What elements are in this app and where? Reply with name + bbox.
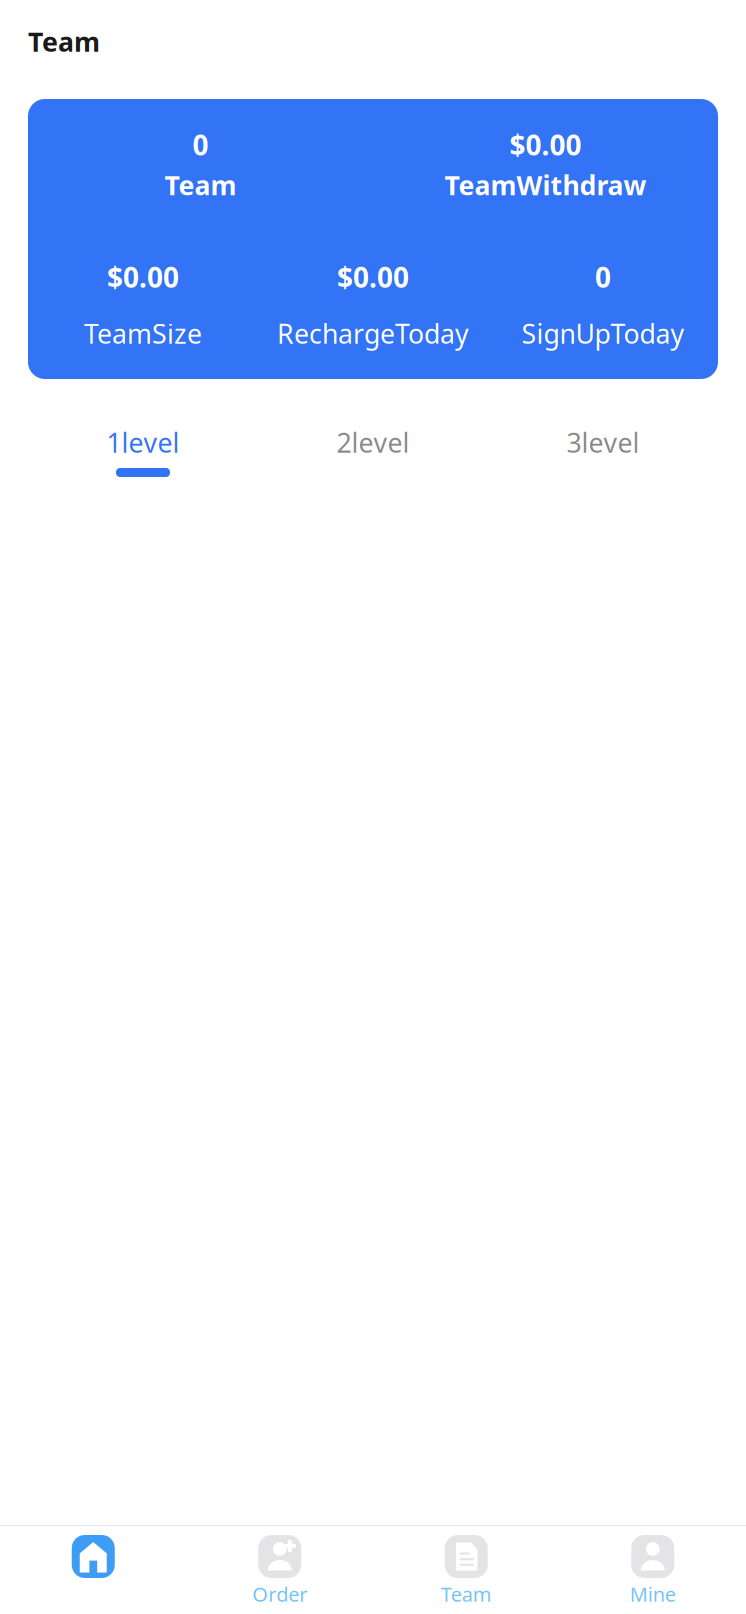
staticText: 3level (566, 425, 639, 460)
staticText: SignUpToday (521, 316, 684, 351)
staticText: Mine (630, 1581, 676, 1607)
staticText: 0 (595, 258, 611, 296)
staticText: 0 (192, 126, 208, 163)
staticText: $0.00 (107, 258, 179, 296)
button[interactable]: Mine (559, 1526, 746, 1614)
button[interactable]: Home (0, 1526, 186, 1614)
button[interactable]: 1level (28, 428, 258, 483)
staticText: $0.00 (337, 258, 409, 296)
staticText: RechargeToday (277, 316, 469, 351)
staticText: $0.00 (509, 126, 581, 163)
staticText: 2level (336, 425, 409, 460)
staticText: 1level (106, 425, 179, 460)
staticText: TeamWithdraw (444, 167, 646, 203)
staticText: Team (441, 1581, 492, 1607)
button[interactable]: Order (186, 1526, 373, 1614)
button[interactable]: Team (373, 1526, 559, 1614)
button[interactable]: 2level (258, 428, 488, 483)
staticText: Order (252, 1581, 307, 1607)
button[interactable]: 3level (488, 428, 718, 483)
staticText: TeamSize (84, 316, 202, 351)
staticText: Team (164, 167, 236, 203)
staticText: Team (28, 24, 100, 59)
